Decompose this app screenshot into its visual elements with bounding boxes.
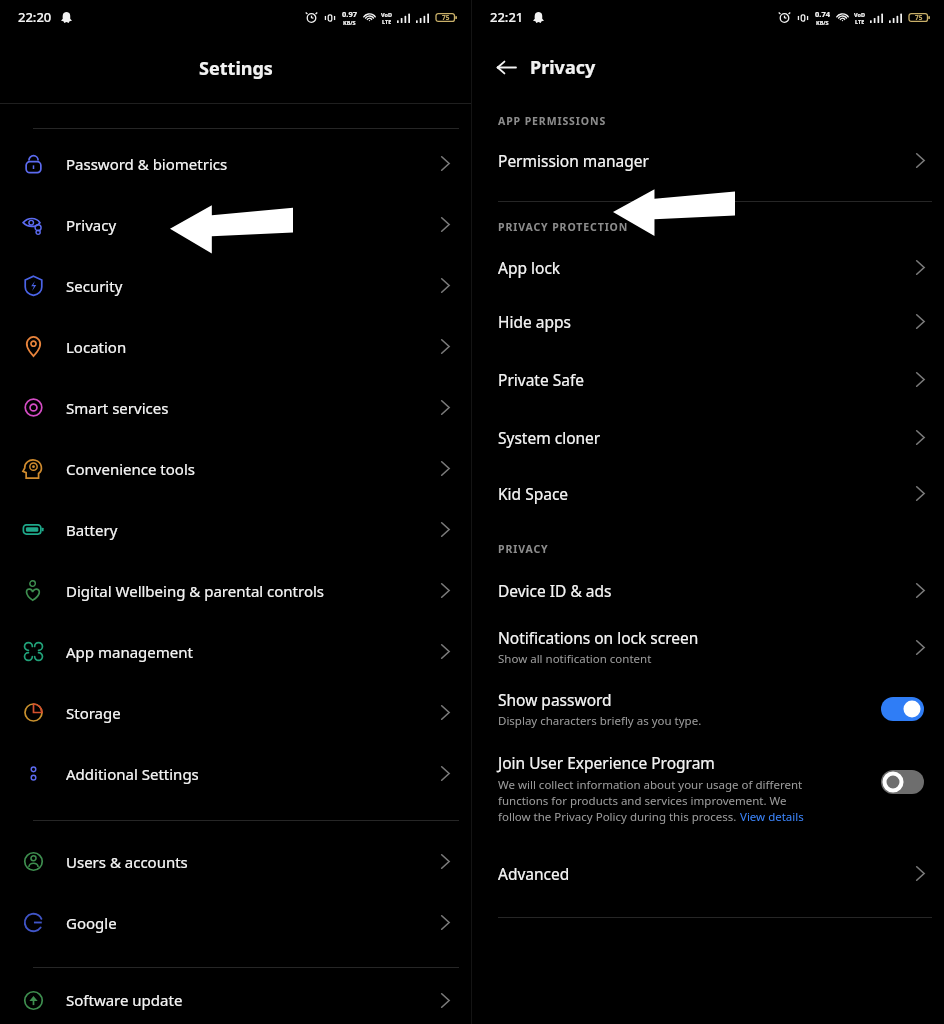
button[interactable]: Google bbox=[0, 892, 471, 953]
button[interactable]: Software update bbox=[0, 976, 471, 1024]
button[interactable]: View details bbox=[740, 809, 804, 825]
staticText: Location bbox=[66, 337, 439, 357]
button[interactable]: Password & biometrics bbox=[0, 133, 471, 194]
button[interactable]: Users & accounts bbox=[0, 831, 471, 892]
button[interactable]: Storage bbox=[0, 682, 471, 743]
staticText: Software update bbox=[66, 990, 439, 1010]
button[interactable]: Notifications on lock screen bbox=[472, 616, 944, 678]
staticText: Device ID & ads bbox=[498, 580, 612, 601]
button[interactable]: Advanced bbox=[472, 851, 944, 895]
staticText: App management bbox=[66, 642, 439, 662]
button[interactable]: Kid Space bbox=[472, 466, 944, 520]
staticText: KB/S bbox=[343, 19, 356, 26]
button[interactable]: Hide apps bbox=[472, 292, 944, 350]
staticText: Users & accounts bbox=[66, 852, 439, 872]
button[interactable]: Toggle off bbox=[881, 770, 924, 794]
other: Arrow pointing at Private Safe bbox=[613, 188, 735, 248]
staticText: Join User Experience Program bbox=[498, 752, 715, 773]
staticText: Battery bbox=[66, 520, 439, 540]
staticText: Security bbox=[66, 276, 439, 296]
staticText: 22:20 bbox=[18, 8, 52, 26]
staticText: PRIVACY PROTECTION bbox=[498, 220, 629, 234]
button[interactable]: Toggle on bbox=[881, 697, 924, 721]
staticText: Smart services bbox=[66, 398, 439, 418]
staticText: Storage bbox=[66, 703, 439, 723]
staticText: follow the Privacy Policy during this pr… bbox=[498, 809, 740, 825]
staticText: 22:21 bbox=[490, 8, 524, 26]
staticText: 0.97 bbox=[342, 9, 357, 19]
button[interactable]: Show password bbox=[472, 678, 944, 740]
staticText: VoD bbox=[381, 11, 392, 18]
button[interactable]: Join User Experience Program bbox=[472, 748, 944, 825]
staticText: System cloner bbox=[498, 427, 601, 448]
staticText: 75 bbox=[442, 13, 450, 22]
button[interactable]: Smart services bbox=[0, 377, 471, 438]
staticText: LTE bbox=[382, 18, 392, 25]
staticText: Private Safe bbox=[498, 369, 584, 390]
staticText: 75 bbox=[915, 13, 923, 22]
button[interactable]: App lock bbox=[472, 242, 944, 292]
staticText: Settings bbox=[199, 56, 273, 81]
staticText: Password & biometrics bbox=[66, 154, 439, 174]
staticText: Additional Settings bbox=[66, 764, 439, 784]
button[interactable]: Privacy bbox=[0, 194, 471, 255]
button[interactable]: Convenience tools bbox=[0, 438, 471, 499]
staticText: functions for products and services impr… bbox=[498, 793, 787, 809]
staticText: 0.74 bbox=[815, 9, 830, 19]
staticText: Privacy bbox=[66, 215, 439, 235]
staticText: Hide apps bbox=[498, 311, 571, 332]
staticText: APP PERMISSIONS bbox=[498, 114, 607, 128]
button[interactable]: System cloner bbox=[472, 408, 944, 466]
button[interactable]: Permission manager bbox=[472, 137, 944, 183]
staticText: LTE bbox=[855, 18, 865, 25]
staticText: Advanced bbox=[498, 863, 570, 884]
staticText: PRIVACY bbox=[498, 542, 549, 556]
staticText: Google bbox=[66, 913, 439, 933]
staticText: App lock bbox=[498, 257, 561, 278]
other: Arrow pointing at Privacy bbox=[170, 204, 293, 266]
staticText: VoD bbox=[854, 11, 865, 18]
button[interactable]: Digital Wellbeing & parental controls bbox=[0, 560, 471, 621]
button[interactable]: Device ID & ads bbox=[472, 564, 944, 616]
staticText: Show password bbox=[498, 689, 612, 710]
staticText: KB/S bbox=[816, 19, 829, 26]
staticText: Digital Wellbeing & parental controls bbox=[66, 581, 439, 601]
button[interactable]: App management bbox=[0, 621, 471, 682]
staticText: Show all notification content bbox=[498, 651, 652, 667]
button[interactable]: Battery bbox=[0, 499, 471, 560]
button[interactable]: Security bbox=[0, 255, 471, 316]
staticText: Notifications on lock screen bbox=[498, 627, 699, 648]
staticText: Privacy bbox=[530, 55, 596, 80]
staticText: Display characters briefly as you type. bbox=[498, 713, 702, 729]
button[interactable]: Additional Settings bbox=[0, 743, 471, 804]
staticText: Convenience tools bbox=[66, 459, 439, 479]
staticText: Kid Space bbox=[498, 483, 569, 504]
staticText: We will collect information about your u… bbox=[498, 777, 803, 793]
button[interactable]: Private Safe bbox=[472, 350, 944, 408]
staticText: Permission manager bbox=[498, 150, 649, 171]
button[interactable]: Back bbox=[486, 47, 526, 87]
button[interactable]: Location bbox=[0, 316, 471, 377]
